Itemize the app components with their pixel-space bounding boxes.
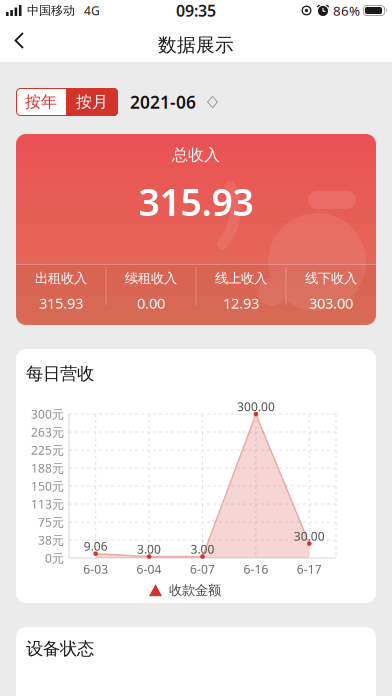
button[interactable]: 按月 [66, 88, 118, 116]
staticText: 数据展示 [158, 33, 234, 56]
staticText: 150元 [31, 478, 64, 494]
staticText: 6-16 [243, 561, 268, 577]
staticText: 收款金额 [169, 582, 221, 598]
staticText: 3.00 [190, 541, 214, 557]
staticText: 113元 [31, 496, 64, 512]
staticText: 3.00 [137, 541, 161, 557]
staticText: 300元 [31, 406, 64, 422]
staticText: 6-03 [83, 561, 108, 577]
staticText: 0元 [45, 550, 64, 566]
staticText: 续租收入 [125, 270, 177, 286]
staticText: 6-17 [297, 561, 322, 577]
staticText: 按月 [76, 92, 108, 112]
staticText: 线下收入 [305, 270, 357, 286]
staticText: 188元 [31, 460, 64, 476]
staticText: 225元 [31, 442, 64, 458]
staticText: 30.00 [294, 528, 325, 544]
staticText: 4G [84, 2, 100, 18]
staticText: 设备状态 [26, 638, 94, 659]
staticText: 线上收入 [215, 270, 267, 286]
staticText: 2021-06 [130, 90, 196, 113]
staticText: 75元 [38, 514, 64, 530]
staticText: 6-07 [190, 561, 215, 577]
staticText: 09:35 [176, 0, 216, 21]
staticText: 315.93 [138, 177, 253, 226]
staticText: 12.93 [223, 293, 259, 313]
staticText: 0.00 [137, 293, 165, 313]
staticText: 总收入 [172, 145, 220, 165]
staticText: 出租收入 [35, 270, 87, 286]
staticText: 263元 [31, 424, 64, 440]
staticText: 303.00 [309, 293, 353, 313]
staticText: 每日营收 [26, 363, 94, 384]
staticText: 9.06 [84, 538, 108, 554]
staticText: 中国移动 [27, 3, 75, 18]
staticText: 按年 [25, 92, 57, 112]
staticText: 6-04 [137, 561, 162, 577]
staticText: 300.00 [237, 398, 275, 414]
staticText: 86% [333, 2, 360, 19]
staticText: 38元 [38, 532, 64, 548]
button[interactable] [12, 30, 36, 56]
button[interactable]: 2021-06 [118, 90, 218, 113]
button[interactable]: 按年 [16, 88, 66, 116]
staticText: 315.93 [39, 293, 83, 313]
